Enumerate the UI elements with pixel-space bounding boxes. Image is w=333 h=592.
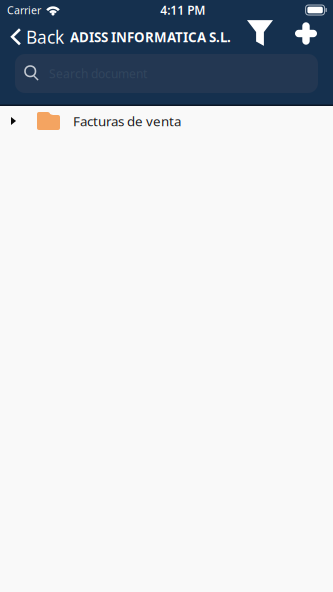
button[interactable]: Add xyxy=(284,20,326,54)
button[interactable]: Back xyxy=(0,20,64,53)
staticText: Back xyxy=(26,25,64,48)
staticText: Facturas de venta xyxy=(73,112,181,130)
button[interactable]: Facturas de venta xyxy=(0,106,333,136)
button[interactable]: Filter xyxy=(237,20,284,54)
staticText: ADISS INFORMATICA S.L. xyxy=(70,28,231,46)
staticText: Search document xyxy=(49,65,147,81)
staticText: Carrier xyxy=(7,3,41,17)
staticText: 4:11 PM xyxy=(160,2,205,18)
